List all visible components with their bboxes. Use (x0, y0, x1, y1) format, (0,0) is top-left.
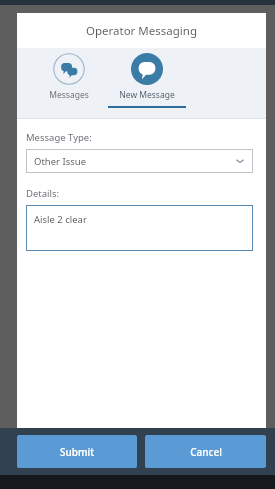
staticText: Cancel (190, 445, 222, 459)
button[interactable]: Other Issue (26, 149, 253, 173)
button[interactable]: New Message (108, 48, 186, 118)
staticText: Other Issue (34, 155, 235, 168)
staticText: Message Type: (26, 131, 92, 144)
staticText: Aisle 2 clear (34, 213, 87, 226)
button[interactable]: Aisle 2 clear (26, 205, 253, 251)
button[interactable]: Messages (38, 48, 100, 118)
staticText: Operator Messaging (86, 23, 197, 39)
button[interactable]: Cancel (145, 435, 266, 468)
staticText: Details: (26, 187, 60, 200)
staticText: Messages (49, 89, 89, 101)
button[interactable]: Submit (17, 435, 137, 468)
staticText: Submit (60, 445, 94, 459)
staticText: New Message (119, 89, 175, 101)
